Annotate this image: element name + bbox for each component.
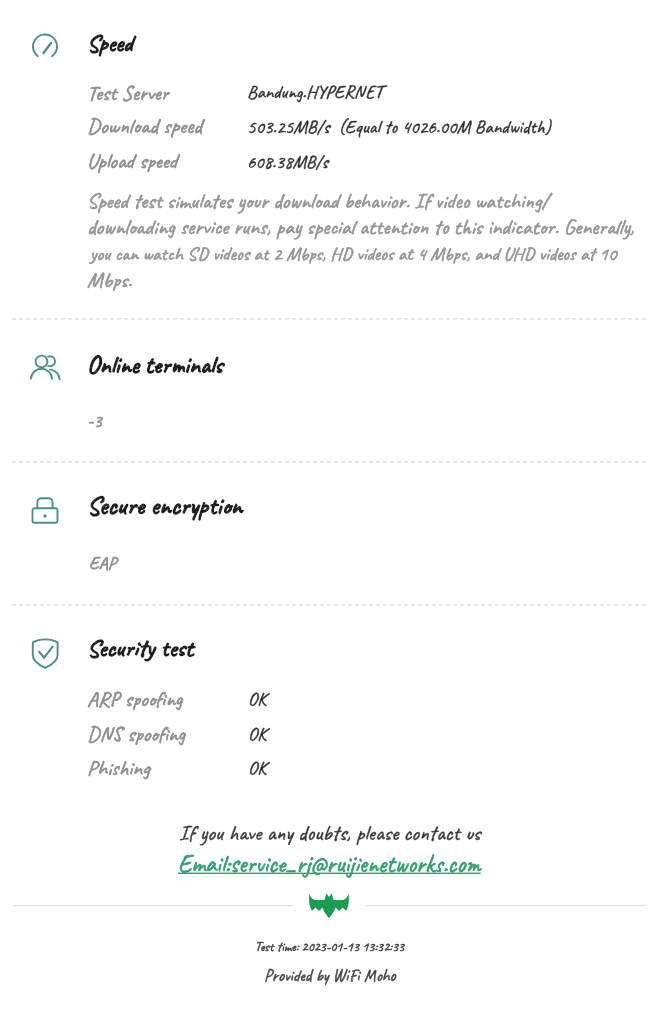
staticText: If you have any doubts, please contact u…	[179, 819, 481, 846]
staticText: If you have any doubts, please contact u…	[179, 819, 481, 846]
staticText: Speed test simulates your download behav…	[87, 187, 549, 214]
staticText: Test Server	[87, 79, 169, 106]
staticText: Secure encryption	[87, 489, 243, 522]
staticText: Online terminals	[87, 349, 223, 380]
staticText: OK	[248, 687, 267, 710]
staticText: Download speed	[87, 112, 202, 140]
staticText: ARP spoofing	[87, 685, 183, 712]
staticText: DNS spoofing	[87, 720, 186, 747]
staticText: ARP spoofing	[87, 685, 183, 712]
staticText: OK	[248, 722, 267, 745]
staticText: -3	[87, 409, 102, 433]
staticText: Provided by WiFi Moho	[264, 965, 396, 986]
staticText: Mbps.	[87, 266, 132, 293]
staticText: you can watch SD videos at 2 Mbps, HD vi…	[90, 242, 617, 266]
staticText: OK	[248, 687, 267, 710]
staticText: Speed	[87, 28, 133, 58]
staticText: Upload speed	[87, 147, 178, 174]
staticText: you can watch SD videos at 2 Mbps, HD vi…	[90, 242, 617, 266]
staticText: OK	[248, 756, 267, 779]
staticText: EAP	[89, 552, 117, 575]
staticText: 608.38MB/s	[247, 150, 328, 173]
staticText: Security test	[87, 632, 194, 663]
staticText: Download speed	[87, 112, 202, 140]
staticText: Bandung.HYPERNET	[247, 80, 383, 103]
staticText: OK	[248, 756, 267, 779]
staticText: Email:service_rj@ruijienetworks.com	[178, 848, 481, 879]
staticText: 503.25MB/s (Equal to 4026.00M Bandwidth)	[247, 115, 551, 139]
staticText: Security test	[87, 632, 194, 663]
staticText: Upload speed	[87, 147, 178, 174]
staticText: Test time: 2023-01-13 13:32:33	[255, 938, 405, 955]
staticText: Mbps.	[87, 266, 132, 293]
staticText: Test Server	[87, 79, 169, 106]
staticText: OK	[248, 722, 267, 745]
button[interactable]: Email:service_rj@ruijienetworks.com	[178, 848, 481, 879]
staticText: Phishing	[87, 754, 150, 781]
staticText: Provided by WiFi Moho	[264, 965, 396, 986]
staticText: Email:service_rj@ruijienetworks.com	[178, 848, 481, 879]
staticText: downloading service runs, pay special at…	[87, 213, 635, 240]
staticText: -3	[87, 409, 102, 433]
staticText: Phishing	[87, 754, 150, 781]
staticText: EAP	[89, 552, 117, 575]
staticText: Online terminals	[87, 349, 223, 380]
staticText: downloading service runs, pay special at…	[87, 213, 635, 240]
staticText: DNS spoofing	[87, 720, 186, 747]
staticText: Speed test simulates your download behav…	[87, 187, 549, 214]
staticText: Speed	[87, 28, 133, 58]
staticText: Test time: 2023-01-13 13:32:33	[255, 938, 405, 955]
staticText: Secure encryption	[87, 489, 243, 522]
staticText: Bandung.HYPERNET	[247, 80, 383, 103]
staticText: 503.25MB/s (Equal to 4026.00M Bandwidth)	[247, 115, 551, 139]
staticText: 608.38MB/s	[247, 150, 328, 173]
